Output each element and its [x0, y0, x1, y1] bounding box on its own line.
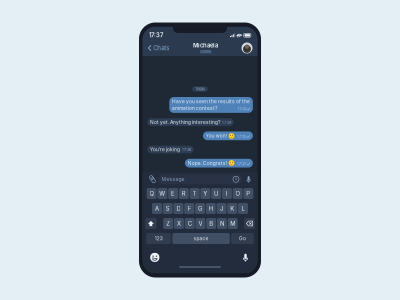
button[interactable]: H	[206, 203, 216, 214]
staticText: space	[193, 236, 208, 241]
staticText: A	[155, 205, 159, 212]
button[interactable]: R	[179, 188, 189, 199]
staticText: Y	[203, 190, 207, 197]
staticText: M	[230, 220, 235, 227]
staticText: 🙂	[228, 160, 235, 166]
staticText: Online	[200, 49, 211, 54]
staticText: Message	[161, 176, 184, 182]
button[interactable]: B	[206, 218, 216, 229]
staticText: 17:37	[237, 161, 246, 166]
staticText: Chats	[153, 44, 169, 52]
staticText: You won!	[206, 133, 227, 139]
staticText: K	[230, 205, 234, 212]
staticText: 17:34	[222, 120, 231, 125]
staticText: J	[220, 205, 223, 212]
button[interactable]: Z	[163, 218, 173, 229]
button[interactable]: X	[174, 218, 184, 229]
staticText: G	[198, 205, 202, 212]
staticText: Today	[195, 87, 205, 91]
button[interactable]: Delete	[244, 218, 255, 229]
staticText: P	[246, 190, 250, 197]
button[interactable]: Contact profile	[241, 42, 252, 53]
button[interactable]: T	[190, 188, 199, 199]
button[interactable]: A	[152, 203, 162, 214]
button[interactable]: Attach	[147, 174, 158, 185]
staticText: T	[193, 190, 197, 197]
staticText: I	[226, 190, 228, 197]
staticText: 17:35	[237, 134, 246, 139]
staticText: S	[166, 205, 170, 212]
staticText: F	[188, 205, 191, 212]
button[interactable]: E	[168, 188, 178, 199]
button[interactable]: K	[227, 203, 237, 214]
button[interactable]: V	[195, 218, 205, 229]
button[interactable]: I	[222, 188, 232, 199]
button[interactable]: space	[172, 233, 230, 244]
button[interactable]: S	[163, 203, 173, 214]
button[interactable]: 123	[146, 233, 171, 244]
staticText: O	[236, 190, 240, 197]
staticText: 🙂	[228, 132, 235, 139]
button[interactable]: Voice message	[244, 174, 253, 185]
staticText: animation contest?	[172, 105, 217, 111]
button[interactable]: N	[217, 218, 227, 229]
staticText: H	[209, 205, 213, 212]
button[interactable]: M	[228, 218, 238, 229]
staticText: Nope. Congrats!	[188, 160, 227, 166]
button[interactable]: W	[157, 188, 167, 199]
staticText: Have you seen the results of the	[172, 99, 250, 104]
button[interactable]: Shift	[145, 218, 157, 229]
staticText: Not yet. Anything interesting?	[150, 119, 220, 125]
staticText: W	[159, 190, 165, 197]
button[interactable]: P	[243, 188, 253, 199]
staticText: 17:33	[237, 107, 246, 111]
staticText: N	[220, 220, 224, 227]
staticText: Z	[166, 220, 170, 227]
staticText: R	[182, 190, 186, 197]
staticText: D	[176, 205, 180, 212]
staticText: Michaela	[193, 42, 218, 49]
button[interactable]: F	[184, 203, 194, 214]
button[interactable]: Y	[200, 188, 210, 199]
staticText: U	[214, 190, 218, 197]
staticText: X	[177, 220, 181, 227]
staticText: Q	[150, 190, 154, 197]
staticText: B	[209, 220, 213, 227]
staticText: V	[198, 220, 202, 227]
staticText: 123	[155, 236, 163, 241]
button[interactable]: U	[211, 188, 221, 199]
button[interactable]: Dictate	[242, 253, 248, 262]
button[interactable]: J	[216, 203, 226, 214]
button[interactable]: C	[185, 218, 195, 229]
staticText: Go	[239, 236, 246, 241]
staticText: C	[188, 220, 192, 227]
button[interactable]: Go	[231, 233, 254, 244]
button[interactable]: D	[173, 203, 183, 214]
staticText: E	[171, 190, 175, 197]
staticText: L	[241, 205, 244, 212]
button[interactable]: L	[238, 203, 248, 214]
button[interactable]: G	[195, 203, 205, 214]
button[interactable]: Q	[147, 188, 156, 199]
staticText: 17:36	[182, 147, 191, 152]
button[interactable]: Chats	[147, 42, 169, 54]
staticText: 17:37	[149, 32, 163, 39]
button[interactable]: Emoji	[150, 253, 159, 262]
button[interactable]: O	[233, 188, 242, 199]
staticText: You're joking	[150, 147, 180, 152]
